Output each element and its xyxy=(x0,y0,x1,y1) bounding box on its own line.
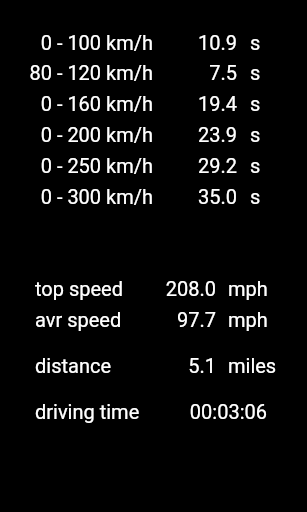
staticText: 0 - 160 km/h xyxy=(0,92,153,115)
staticText: 0 - 300 km/h xyxy=(0,185,153,208)
staticText: 208.0 xyxy=(129,277,216,300)
staticText: mph xyxy=(228,308,298,331)
staticText: s xyxy=(250,92,290,115)
staticText: driving time xyxy=(35,400,195,423)
staticText: avr speed xyxy=(35,308,195,331)
staticText: miles xyxy=(228,354,298,377)
staticText: 10.9 xyxy=(152,31,237,54)
staticText: 35.0 xyxy=(152,185,237,208)
staticText: 7.5 xyxy=(152,61,237,84)
staticText: top speed xyxy=(35,277,195,300)
staticText: 80 - 120 km/h xyxy=(0,61,153,84)
staticText: 5.1 xyxy=(129,354,216,377)
staticText: 0 - 200 km/h xyxy=(0,123,153,146)
button[interactable]: 80 - 120 km/h 7.5 s xyxy=(0,58,307,88)
staticText: 19.4 xyxy=(152,92,237,115)
staticText: distance xyxy=(35,354,195,377)
button[interactable]: driving time 00:03:06 xyxy=(0,396,307,426)
staticText: s xyxy=(250,154,290,177)
button[interactable]: 0 - 300 km/h 35.0 s xyxy=(0,181,307,211)
button[interactable]: 0 - 200 km/h 23.9 s xyxy=(0,119,307,149)
staticText: 0 - 100 km/h xyxy=(0,31,153,54)
staticText: s xyxy=(250,185,290,208)
staticText: 23.9 xyxy=(152,123,237,146)
button[interactable]: top speed 208.0 mph xyxy=(0,273,307,303)
button[interactable]: 0 - 250 km/h 29.2 s xyxy=(0,150,307,180)
staticText: 00:03:06 xyxy=(149,400,267,423)
staticText: mph xyxy=(228,277,298,300)
staticText: s xyxy=(250,61,290,84)
button[interactable]: 0 - 100 km/h 10.9 s xyxy=(0,27,307,57)
button[interactable]: distance 5.1 miles xyxy=(0,350,307,380)
button[interactable]: 0 - 160 km/h 19.4 s xyxy=(0,89,307,119)
staticText: 0 - 250 km/h xyxy=(0,154,153,177)
staticText: s xyxy=(250,31,290,54)
button[interactable]: avr speed 97.7 mph xyxy=(0,304,307,334)
staticText: s xyxy=(250,123,290,146)
staticText: 29.2 xyxy=(152,154,237,177)
staticText: 97.7 xyxy=(129,308,216,331)
